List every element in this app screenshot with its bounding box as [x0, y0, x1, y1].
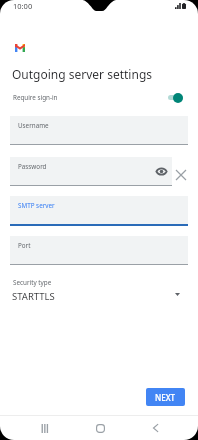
- staticText: NEXT: [155, 392, 176, 403]
- button[interactable]: Clear password: [172, 166, 190, 184]
- button[interactable]: NEXT: [146, 388, 185, 406]
- button[interactable]: Username: [10, 116, 188, 144]
- button[interactable]: Back: [141, 416, 169, 440]
- button[interactable]: Home: [86, 416, 114, 440]
- button[interactable]: Require sign-in: [0, 88, 198, 107]
- staticText: Require sign-in: [13, 93, 58, 102]
- staticText: 10:00: [13, 1, 33, 11]
- button[interactable]: Security type: [0, 274, 198, 308]
- staticText: Outgoing server settings: [12, 66, 153, 82]
- button[interactable]: Password: [10, 157, 172, 185]
- staticText: SMTP server: [18, 201, 55, 210]
- button[interactable]: Require sign-in: [168, 92, 183, 103]
- button[interactable]: SMTP server: [10, 196, 188, 224]
- button[interactable]: Port: [10, 236, 188, 264]
- staticText: STARTTLS: [12, 290, 55, 303]
- staticText: Username: [18, 121, 49, 130]
- staticText: Port: [18, 241, 31, 250]
- button[interactable]: Recent apps: [30, 416, 58, 440]
- staticText: Security type: [13, 278, 52, 287]
- staticText: Password: [18, 162, 47, 171]
- button[interactable]: Show password: [151, 160, 171, 182]
